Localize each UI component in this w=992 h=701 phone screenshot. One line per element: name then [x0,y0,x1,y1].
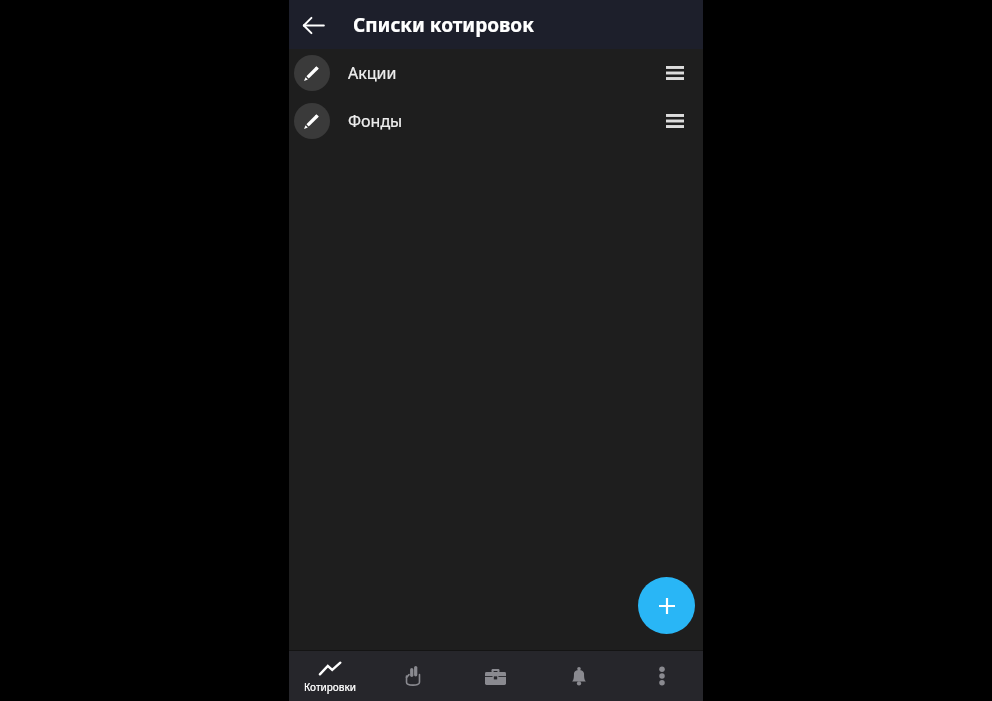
staticText: Фонды [348,110,403,132]
button[interactable]: Notifications [537,651,620,701]
button[interactable]: Reorder Фонды [655,101,695,141]
button[interactable]: Edit Акции [294,55,330,91]
staticText: Списки котировок [353,12,534,38]
button[interactable]: Portfolio [454,651,537,701]
button[interactable]: Edit Фонды [294,103,330,139]
staticText: Акции [348,62,397,84]
button[interactable]: Back [289,1,337,49]
button[interactable]: Edit Фонды [289,97,703,145]
staticText: Котировки [304,680,356,694]
button[interactable]: Reorder Акции [655,53,695,93]
button[interactable]: Trade [371,651,454,701]
button[interactable]: Add list [638,577,695,634]
button[interactable]: More [620,651,703,701]
button[interactable]: Котировки [289,651,371,701]
button[interactable]: Edit Акции [289,49,703,97]
